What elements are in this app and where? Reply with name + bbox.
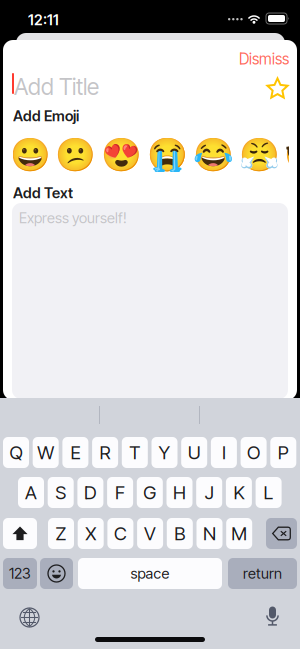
button[interactable]: Emoji xyxy=(288,138,300,172)
staticText: F xyxy=(115,481,125,504)
staticText: P xyxy=(278,441,289,464)
staticText: 😀 xyxy=(9,136,50,174)
button[interactable]: U xyxy=(181,437,207,468)
staticText: Z xyxy=(55,522,66,545)
staticText: Express yourself! xyxy=(19,209,127,227)
staticText: M xyxy=(231,522,247,545)
button[interactable]: Shift xyxy=(3,518,37,549)
button[interactable]: A xyxy=(18,477,44,508)
button[interactable]: return xyxy=(228,558,297,589)
staticText: X xyxy=(85,522,96,545)
staticText: K xyxy=(233,481,244,504)
button[interactable]: space xyxy=(78,558,222,589)
button[interactable]: Q xyxy=(3,437,29,468)
staticText: Add Title xyxy=(14,73,99,100)
button[interactable]: Emoji keyboard xyxy=(40,558,73,589)
button[interactable]: Delete xyxy=(266,518,297,549)
button[interactable]: Emoji xyxy=(105,138,139,172)
staticText: space xyxy=(130,565,169,582)
staticText: 😍 xyxy=(101,136,142,174)
button[interactable]: Emoji xyxy=(242,138,276,172)
button[interactable]: I xyxy=(211,437,237,468)
staticText: C xyxy=(114,522,127,545)
button[interactable]: K xyxy=(226,477,252,508)
button[interactable]: M xyxy=(226,518,252,549)
button[interactable]: N xyxy=(196,518,222,549)
button[interactable]: Dictate xyxy=(258,599,287,634)
button[interactable]: E xyxy=(62,437,88,468)
button[interactable]: H xyxy=(166,477,192,508)
button[interactable]: F xyxy=(107,477,133,508)
staticText: T xyxy=(129,441,140,464)
staticText: J xyxy=(205,481,214,504)
staticText: D xyxy=(84,481,97,504)
staticText: Q xyxy=(9,441,22,464)
button[interactable]: Emoji xyxy=(150,138,184,172)
button[interactable]: C xyxy=(107,518,133,549)
staticText: S xyxy=(55,481,66,504)
button[interactable]: V xyxy=(137,518,163,549)
staticText: Add Text xyxy=(13,184,73,202)
staticText: 😕 xyxy=(55,136,96,174)
staticText: L xyxy=(264,481,274,504)
button[interactable]: Dismiss xyxy=(213,49,289,69)
staticText: H xyxy=(173,481,186,504)
button[interactable]: S xyxy=(48,477,74,508)
staticText: I xyxy=(222,441,226,464)
button[interactable]: Emoji xyxy=(13,138,47,172)
staticText: B xyxy=(174,522,185,545)
staticText: return xyxy=(243,565,282,582)
button[interactable]: L xyxy=(256,477,282,508)
staticText: N xyxy=(203,522,216,545)
staticText: R xyxy=(100,441,111,464)
staticText: A xyxy=(25,481,37,504)
button[interactable]: J xyxy=(196,477,222,508)
button[interactable]: X xyxy=(78,518,104,549)
staticText: Y xyxy=(158,441,170,464)
button[interactable]: Favorite xyxy=(261,73,294,105)
button[interactable]: Y xyxy=(151,437,177,468)
staticText: 😤 xyxy=(238,136,279,174)
button[interactable]: Next keyboard xyxy=(13,601,46,634)
staticText: W xyxy=(37,441,54,464)
staticText: Dismiss xyxy=(239,50,289,68)
staticText: 123 xyxy=(9,565,31,582)
button[interactable]: R xyxy=(92,437,118,468)
button[interactable]: B xyxy=(167,518,193,549)
button[interactable]: Z xyxy=(48,518,74,549)
staticText: 😂 xyxy=(193,136,234,174)
staticText: G xyxy=(143,481,156,504)
staticText: 😎 xyxy=(284,136,300,174)
button[interactable]: G xyxy=(137,477,163,508)
button[interactable]: D xyxy=(77,477,103,508)
staticText: 12:11 xyxy=(28,11,59,29)
staticText: V xyxy=(144,522,156,545)
staticText: E xyxy=(70,441,80,464)
staticText: Add Emoji xyxy=(13,107,79,125)
staticText: 😭 xyxy=(147,136,188,174)
button[interactable]: 123 xyxy=(3,558,37,589)
button[interactable]: O xyxy=(241,437,267,468)
staticText: O xyxy=(247,441,260,464)
button[interactable]: W xyxy=(33,437,59,468)
button[interactable]: P xyxy=(270,437,296,468)
staticText: U xyxy=(188,441,201,464)
button[interactable]: T xyxy=(122,437,148,468)
button[interactable]: Emoji xyxy=(196,138,230,172)
button[interactable]: Emoji xyxy=(59,138,93,172)
